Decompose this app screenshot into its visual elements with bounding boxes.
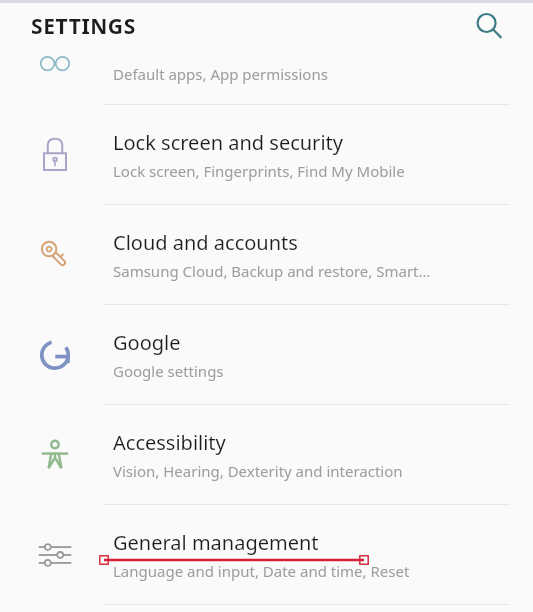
staticText: Language and input, Date and time, Reset (113, 561, 410, 581)
staticText: SETTINGS (31, 12, 136, 41)
staticText: Accessibility (113, 429, 226, 456)
staticText: Cloud and accounts (113, 229, 298, 256)
button[interactable]: Cloud and accounts (0, 205, 533, 305)
staticText: Google settings (113, 361, 224, 381)
staticText: Lock screen and security (113, 129, 343, 156)
button[interactable]: Accessibility (0, 405, 533, 505)
staticText: Lock screen, Fingerprints, Find My Mobil… (113, 161, 405, 181)
staticText: Samsung Cloud, Backup and restore, Smart… (113, 261, 431, 281)
button[interactable]: Search (467, 4, 511, 48)
button[interactable] (0, 52, 533, 105)
button[interactable]: Lock screen and security (0, 105, 533, 205)
staticText: Default apps, App permissions (113, 64, 328, 84)
button[interactable]: General management (0, 505, 533, 605)
button[interactable]: Google (0, 305, 533, 405)
staticText: Vision, Hearing, Dexterity and interacti… (113, 461, 403, 481)
staticText: Google (113, 329, 181, 356)
staticText: General management (113, 529, 319, 556)
